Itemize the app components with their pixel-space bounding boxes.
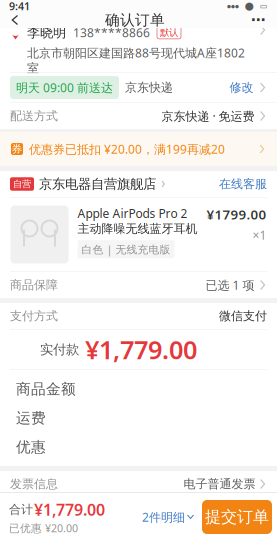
staticText: 实付款 <box>40 341 79 358</box>
staticText: 北京市朝阳区建国路88号现代城A座1802室 <box>27 45 245 76</box>
staticText: 商品保障 <box>10 278 58 292</box>
staticText: 已优惠 ¥20.00 <box>9 521 78 535</box>
button[interactable]: 李晓明 <box>0 28 277 72</box>
staticText: 李晓明 <box>27 24 66 41</box>
staticText: 券 <box>11 142 22 155</box>
button[interactable]: 配送方式 <box>0 103 277 129</box>
staticText: 已选 1 项 <box>206 277 255 293</box>
staticText: 在线客服 <box>219 177 267 191</box>
staticText: 优惠 <box>16 438 46 456</box>
staticText: 京东快递 <box>125 80 173 95</box>
staticText: 订单备注 <box>10 503 58 518</box>
staticText: 修改 <box>230 80 254 95</box>
staticText: ⋯ <box>251 12 266 28</box>
staticText: 京东快递 · 免运费 <box>162 108 255 124</box>
staticText: 确认订单 <box>105 11 165 29</box>
button[interactable]: 券 <box>0 132 277 166</box>
staticText: Apple AirPods Pro 2 主动降噪无线蓝牙耳机 <box>77 205 197 236</box>
button[interactable]: 订单备注 <box>0 497 277 523</box>
staticText: 提交订单 <box>205 507 269 527</box>
staticText: ⦁⦁⦁ ⬤ ▭ <box>227 1 268 11</box>
staticText: ¥1799.00 <box>206 205 266 223</box>
button[interactable]: 返回 <box>3 12 27 27</box>
staticText: ¥1,779.00 <box>85 333 197 366</box>
staticText: 选填 <box>232 503 256 518</box>
button[interactable]: 提交订单 <box>202 500 272 534</box>
staticText: ×1 <box>252 227 266 243</box>
staticText: 优惠券已抵扣 ¥20.00，满199再减20 <box>29 141 225 157</box>
staticText: 自营 <box>13 178 31 190</box>
staticText: ¥1,779.00 <box>34 499 105 520</box>
staticText: 明天 09:00 前送达 <box>16 79 113 95</box>
staticText: 138****8866 <box>73 25 150 41</box>
button[interactable]: 商品保障 <box>0 272 277 298</box>
button[interactable]: 2件明细 <box>138 501 198 533</box>
button[interactable]: 发票信息 <box>0 471 277 497</box>
staticText: 9:41 <box>9 0 30 13</box>
staticText: 配送方式 <box>10 109 58 123</box>
staticText: 白色 | 无线充电版 <box>81 242 170 256</box>
staticText: 合计 <box>9 502 33 517</box>
button[interactable]: 明天 09:00 前送达 <box>0 72 277 102</box>
staticText: 2件明细 <box>142 509 185 525</box>
staticText: 京东电器自营旗舰店 <box>39 176 156 192</box>
staticText: 商品金额 <box>16 380 76 398</box>
staticText: 电子普通发票 <box>184 477 256 491</box>
staticText: 默认 <box>160 27 178 38</box>
staticText: 微信支付 <box>219 309 267 323</box>
staticText: 发票信息 <box>10 477 58 491</box>
staticText: 支付方式 <box>10 309 58 323</box>
staticText: 运费 <box>16 409 46 427</box>
button[interactable]: 更多 <box>243 10 274 30</box>
button[interactable]: 自营 <box>0 171 277 197</box>
